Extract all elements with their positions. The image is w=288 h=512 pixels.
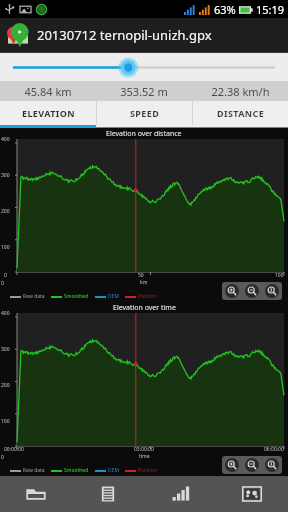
button[interactable]: Zoom in bbox=[225, 458, 239, 472]
staticText: 400 bbox=[1, 136, 10, 143]
staticText: DEM bbox=[108, 467, 119, 474]
staticText: SPEED bbox=[130, 107, 160, 119]
button[interactable]: ELEVATION bbox=[0, 101, 96, 125]
staticText: 0 bbox=[1, 454, 4, 461]
staticText: ELEVATION bbox=[22, 107, 75, 119]
staticText: Raw data bbox=[23, 467, 45, 474]
staticText: 100 bbox=[275, 272, 284, 279]
staticText: 0 bbox=[4, 272, 7, 279]
staticText: 63% bbox=[214, 2, 236, 17]
staticText: 300 bbox=[1, 346, 10, 353]
staticText: time bbox=[139, 453, 150, 460]
button[interactable]: Reset zoom bbox=[265, 284, 279, 298]
staticText: 200 bbox=[1, 382, 10, 389]
staticText: 50 bbox=[138, 272, 144, 279]
button[interactable]: Reset zoom bbox=[265, 458, 279, 472]
staticText: 03:00:00 bbox=[134, 446, 154, 453]
button[interactable]: Zoom in bbox=[225, 284, 239, 298]
button[interactable]: Charts bbox=[144, 476, 216, 512]
staticText: Position bbox=[138, 467, 157, 474]
button[interactable] bbox=[0, 53, 288, 81]
staticText: Smoothed bbox=[64, 467, 89, 474]
button[interactable]: Zoom out bbox=[245, 284, 259, 298]
button[interactable]: DISTANCE bbox=[193, 101, 288, 125]
staticText: DEM bbox=[108, 293, 119, 300]
staticText: 300 bbox=[1, 172, 10, 179]
staticText: 20130712 ternopil-unizh.gpx bbox=[37, 26, 212, 44]
staticText: Position bbox=[138, 293, 157, 300]
staticText: Elevation over distance bbox=[106, 129, 182, 139]
staticText: 22.38 km/h bbox=[211, 84, 270, 99]
staticText: 06:00:00 bbox=[264, 446, 284, 453]
staticText: DISTANCE bbox=[217, 107, 265, 119]
staticText: Smoothed bbox=[64, 293, 89, 300]
staticText: 353.52 m bbox=[120, 84, 168, 99]
staticText: 45.84 km bbox=[24, 84, 72, 99]
staticText: 200 bbox=[1, 208, 10, 215]
staticText: Elevation over time bbox=[113, 303, 176, 313]
button[interactable]: Map bbox=[216, 476, 288, 512]
staticText: 100 bbox=[1, 244, 10, 251]
staticText: 0 bbox=[1, 280, 4, 287]
staticText: 400 bbox=[1, 310, 10, 317]
button[interactable]: SPEED bbox=[97, 101, 192, 125]
staticText: km bbox=[140, 279, 148, 286]
staticText: Raw data bbox=[23, 293, 45, 300]
staticText: 15:19 bbox=[256, 2, 285, 17]
staticText: 00:00:00 bbox=[4, 446, 24, 453]
staticText: 100 bbox=[1, 418, 10, 425]
button[interactable]: Zoom out bbox=[245, 458, 259, 472]
button[interactable]: Details bbox=[72, 476, 144, 512]
button[interactable]: Open file bbox=[0, 476, 72, 512]
